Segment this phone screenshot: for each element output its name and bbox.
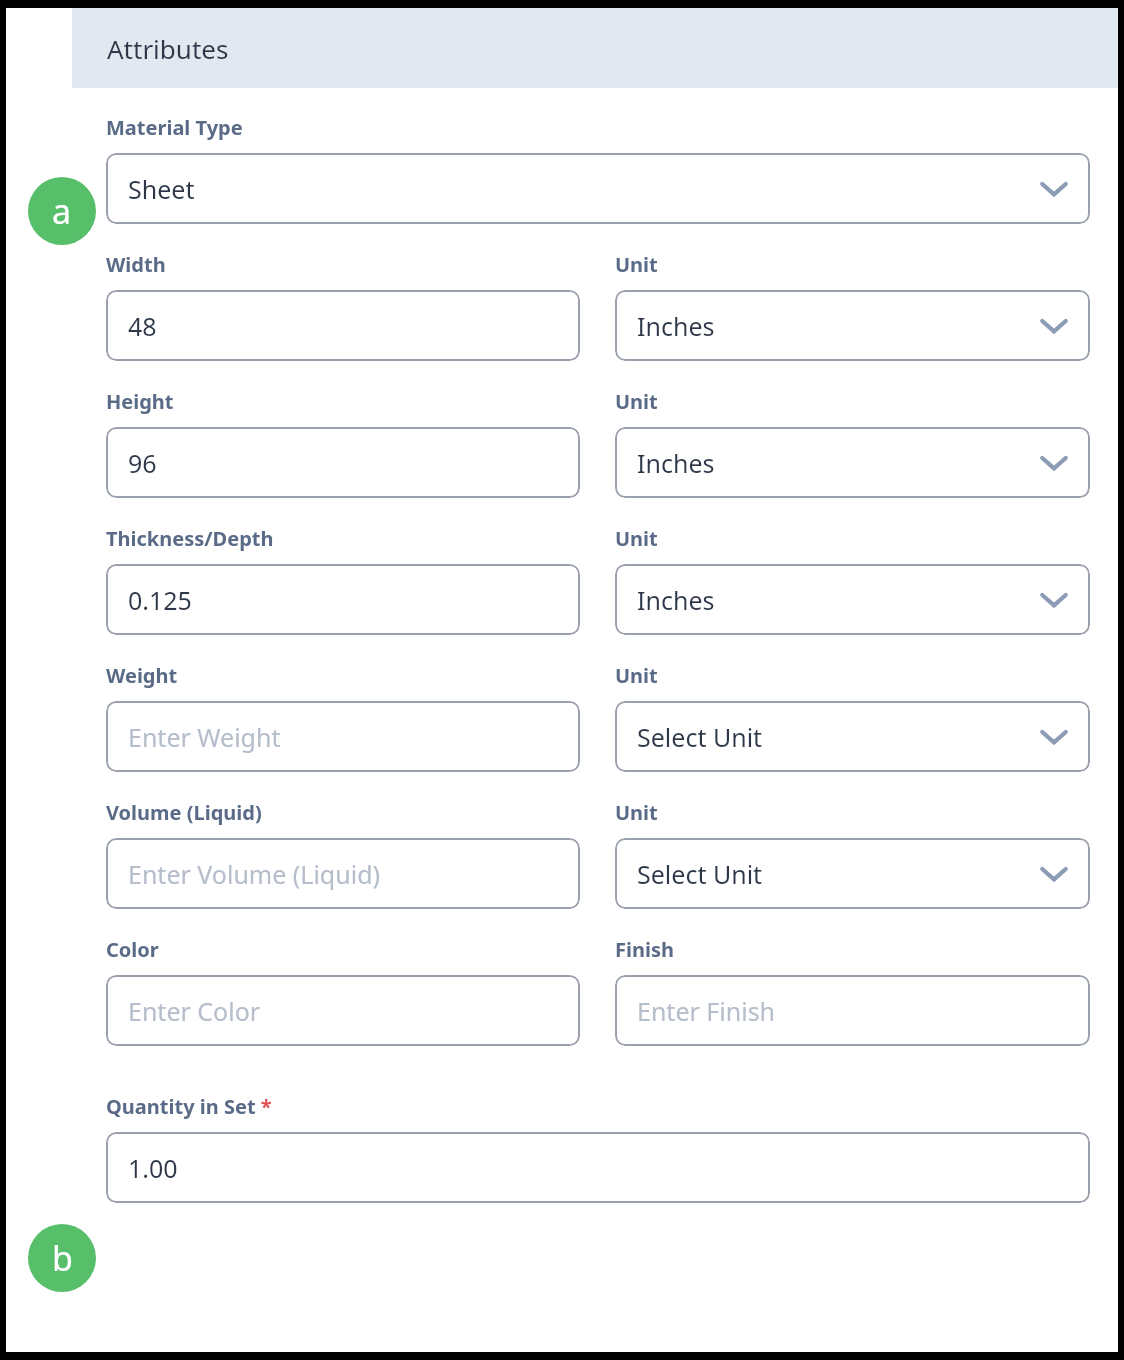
- staticText: Thickness/Depth: [106, 525, 274, 552]
- button[interactable]: Enter Weight: [106, 701, 580, 772]
- staticText: Finish: [615, 936, 674, 963]
- staticText: Enter Weight: [128, 720, 281, 754]
- other: Open Material Type dropdown: [1040, 180, 1068, 198]
- button[interactable]: Inches: [615, 427, 1090, 498]
- staticText: Height: [106, 388, 174, 415]
- other: Open Unit dropdown: [1040, 591, 1068, 609]
- other: Open Unit dropdown: [1040, 454, 1068, 472]
- staticText: b: [52, 1235, 73, 1281]
- button[interactable]: Inches: [615, 564, 1090, 635]
- staticText: Unit: [615, 251, 658, 278]
- button[interactable]: 1.00: [106, 1132, 1090, 1203]
- staticText: Inches: [637, 446, 715, 480]
- other: Open Unit dropdown: [1040, 865, 1068, 883]
- button[interactable]: 96: [106, 427, 580, 498]
- staticText: 48: [128, 309, 157, 343]
- button[interactable]: Inches: [615, 290, 1090, 361]
- staticText: Inches: [637, 309, 715, 343]
- button[interactable]: Enter Finish: [615, 975, 1090, 1046]
- button[interactable]: 48: [106, 290, 580, 361]
- staticText: Attributes: [107, 31, 229, 66]
- button[interactable]: Enter Color: [106, 975, 580, 1046]
- button[interactable]: Annotation b: [28, 1224, 96, 1292]
- staticText: Material Type: [106, 114, 243, 141]
- staticText: 1.00: [128, 1151, 178, 1185]
- staticText: Weight: [106, 662, 178, 689]
- other: Open Unit dropdown: [1040, 728, 1068, 746]
- staticText: Select Unit: [637, 720, 763, 754]
- staticText: Volume (Liquid): [106, 799, 262, 826]
- staticText: 0.125: [128, 583, 192, 617]
- other: Open Unit dropdown: [1040, 317, 1068, 335]
- staticText: Quantity in Set *: [106, 1093, 272, 1120]
- button[interactable]: 0.125: [106, 564, 580, 635]
- staticText: a: [52, 188, 72, 234]
- button[interactable]: Annotation a: [28, 177, 96, 245]
- staticText: Enter Color: [128, 994, 261, 1028]
- button[interactable]: Select Unit: [615, 838, 1090, 909]
- staticText: Unit: [615, 525, 658, 552]
- staticText: Unit: [615, 388, 658, 415]
- button[interactable]: Enter Volume (Liquid): [106, 838, 580, 909]
- staticText: Select Unit: [637, 857, 763, 891]
- staticText: Unit: [615, 799, 658, 826]
- button[interactable]: Sheet: [106, 153, 1090, 224]
- button[interactable]: Select Unit: [615, 701, 1090, 772]
- staticText: Unit: [615, 662, 658, 689]
- staticText: Sheet: [128, 172, 195, 206]
- staticText: 96: [128, 446, 157, 480]
- staticText: Inches: [637, 583, 715, 617]
- staticText: Color: [106, 936, 159, 963]
- staticText: Enter Volume (Liquid): [128, 857, 381, 891]
- staticText: Enter Finish: [637, 994, 776, 1028]
- staticText: Width: [106, 251, 166, 278]
